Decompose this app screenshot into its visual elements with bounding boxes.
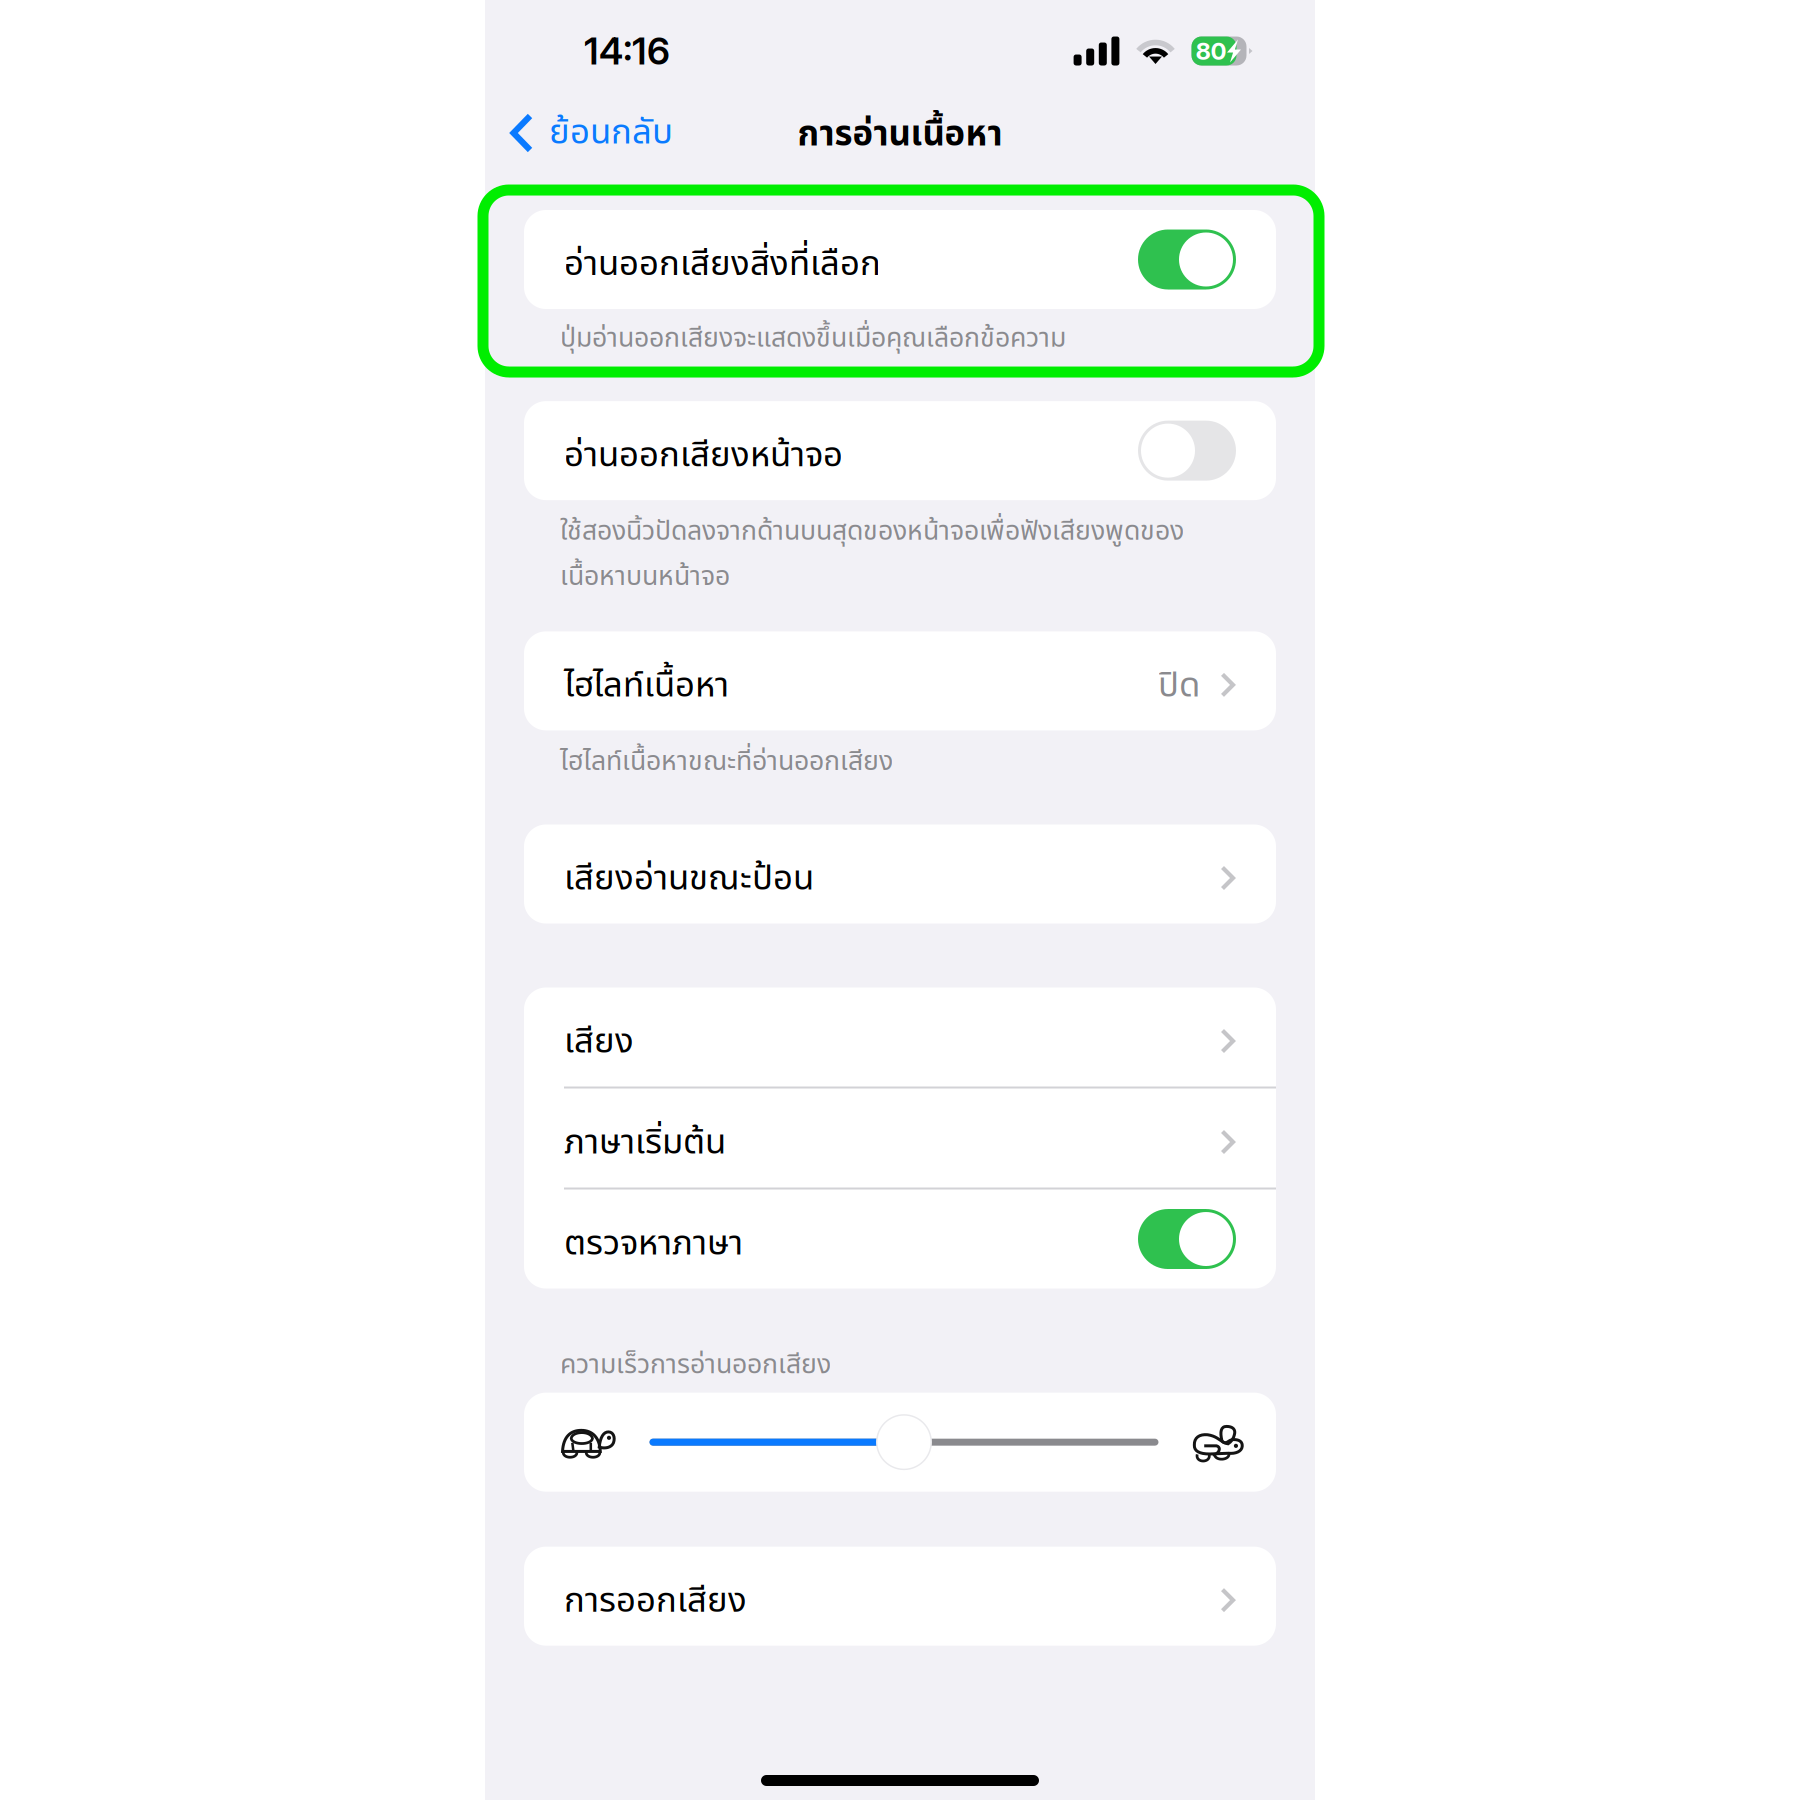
button[interactable]: ย้อนกลับ <box>485 102 673 178</box>
staticText: ความเร็วการอ่านออกเสียง <box>560 1342 831 1388</box>
staticText: ตรวจหาภาษา <box>564 1218 743 1270</box>
staticText: ไฮไลท์เนื้อหาขณะที่อ่านออกเสียง <box>560 739 893 784</box>
button[interactable]: ไฮไลท์เนื้อหา <box>524 631 1276 730</box>
staticText: เสียง <box>564 1016 634 1068</box>
staticText: ปิด <box>1158 660 1200 712</box>
staticText: อ่านออกเสียงสิ่งที่เลือก <box>564 238 881 291</box>
button[interactable]: การออกเสียง <box>524 1547 1276 1646</box>
staticText: การออกเสียง <box>564 1575 747 1627</box>
staticText: ใช้สองนิ้วปัดลงจากด้านบนสุดของหน้าจอเพื่… <box>560 509 1184 599</box>
staticText: ย้อนกลับ <box>549 107 673 159</box>
button[interactable]: ตรวจหาภาษา <box>524 1189 1276 1288</box>
button[interactable]: เสียง <box>524 987 1276 1086</box>
staticText: ภาษาเริ่มต้น <box>564 1117 726 1169</box>
staticText: ปุ่มอ่านออกเสียงจะแสดงขึ้นเมื่อคุณเลือกข… <box>560 316 1066 361</box>
staticText: ไฮไลท์เนื้อหา <box>564 660 729 712</box>
staticText: เสียงอ่านขณะป้อน <box>564 853 814 905</box>
button[interactable]: อ่านออกเสียงสิ่งที่เลือก <box>524 210 1276 309</box>
staticText: อ่านออกเสียงหน้าจอ <box>564 429 843 482</box>
button[interactable]: ภาษาเริ่มต้น <box>524 1088 1276 1187</box>
staticText: 14:16 <box>584 28 670 74</box>
staticText: 80 <box>1195 36 1226 65</box>
button[interactable]: เสียงอ่านขณะป้อน <box>524 824 1276 923</box>
button[interactable]: อ่านออกเสียงหน้าจอ <box>524 401 1276 500</box>
staticText: การอ่านเนื้อหา <box>797 109 1002 161</box>
